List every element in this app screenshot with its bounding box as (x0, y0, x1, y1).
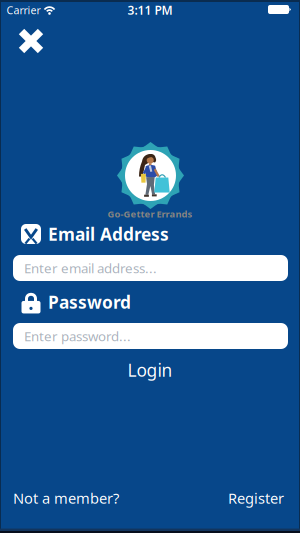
staticText: Register (228, 488, 284, 508)
button[interactable]: Register (228, 486, 284, 510)
staticText: Carrier (6, 3, 40, 17)
staticText: Enter email address... (24, 259, 157, 277)
staticText: Login (127, 358, 172, 381)
staticText: Go-Getter Errands (107, 208, 192, 220)
button[interactable]: Enter email address... (13, 255, 288, 281)
staticText: Enter password... (24, 327, 131, 345)
button[interactable]: Login (110, 358, 190, 382)
staticText: Password (48, 290, 131, 313)
button[interactable] (19, 29, 43, 53)
button[interactable]: Enter password... (13, 323, 288, 349)
staticText: Not a member? (13, 488, 119, 508)
staticText: Email Address (48, 222, 169, 245)
staticText: 3:11 PM (127, 2, 172, 18)
button[interactable]: Not a member? (13, 486, 119, 510)
